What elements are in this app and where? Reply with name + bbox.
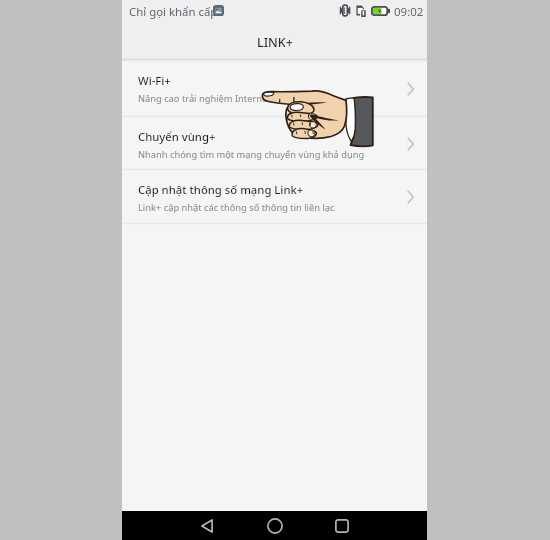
staticText: Chỉ gọi khẩn cấp [129, 4, 218, 20]
staticText: Nâng cao trải nghiệm Internet [138, 92, 271, 105]
staticText: Nhanh chóng tìm một mạng chuyển vùng khả… [138, 148, 365, 161]
button[interactable]: Recent apps [321, 511, 363, 540]
staticText: Chuyển vùng+ [138, 129, 216, 144]
button[interactable]: Cập nhật thông số mạng Link+ [122, 170, 427, 224]
staticText: Link+ cập nhật các thông số thông tin li… [138, 201, 335, 214]
staticText: 09:02 [394, 4, 424, 20]
staticText: Wi-Fi+ [138, 73, 171, 88]
staticText: LINK+ [257, 34, 293, 51]
staticText: Cập nhật thông số mạng Link+ [138, 182, 304, 197]
button[interactable]: Home [254, 511, 296, 540]
button[interactable]: Wi-Fi+ [122, 61, 427, 117]
button[interactable]: Chuyển vùng+ [122, 117, 427, 170]
button[interactable]: Back [186, 511, 228, 540]
